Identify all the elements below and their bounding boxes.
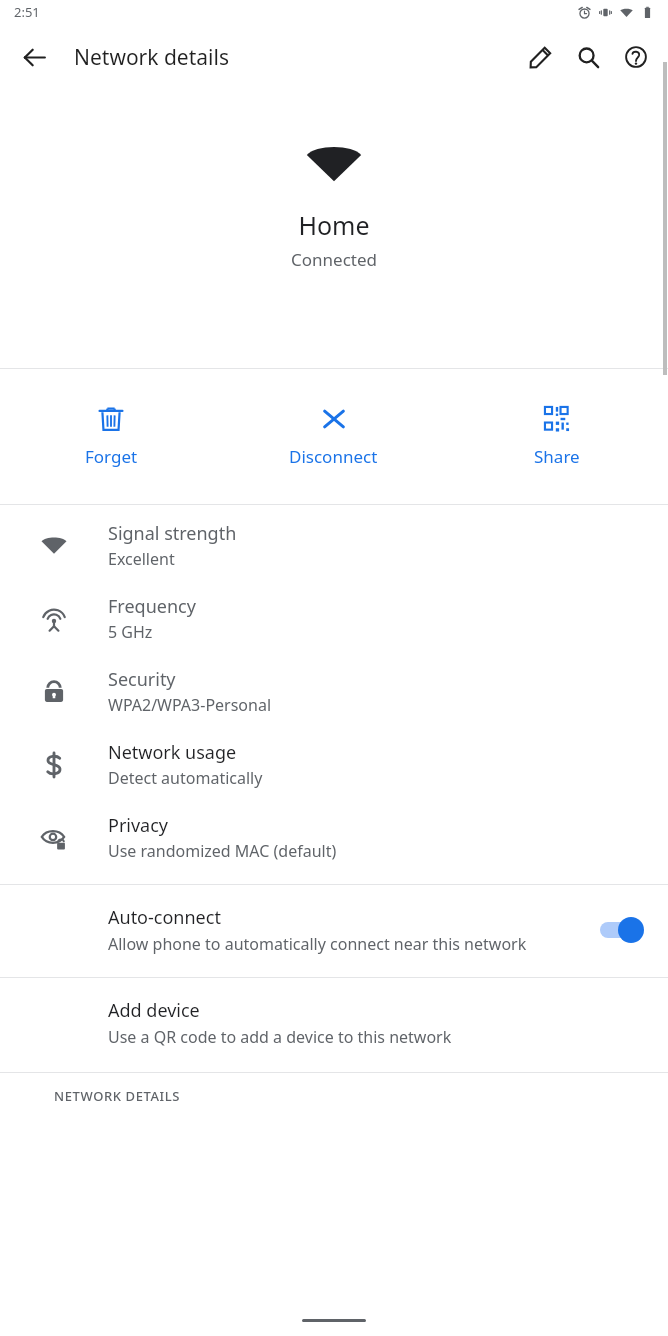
staticText: 5 GHz — [108, 621, 153, 643]
staticText: Disconnect — [289, 445, 378, 468]
button[interactable]: Search — [564, 33, 612, 81]
staticText: Detect automatically — [108, 767, 263, 789]
button[interactable]: Disconnect — [222, 369, 445, 504]
staticText: Auto-connect — [108, 905, 221, 930]
button[interactable]: Signal strength — [0, 505, 668, 582]
staticText: NETWORK DETAILS — [54, 1087, 181, 1105]
button[interactable]: Network usage — [0, 728, 668, 801]
staticText: WPA2/WPA3-Personal — [108, 694, 272, 716]
staticText: Add device — [108, 998, 200, 1023]
staticText: Security — [108, 667, 176, 692]
staticText: Connected — [291, 248, 377, 271]
staticText: Signal strength — [108, 521, 237, 546]
staticText: Privacy — [108, 813, 169, 838]
button[interactable]: Add device — [0, 978, 668, 1072]
staticText: Home — [298, 208, 370, 242]
staticText: Excellent — [108, 548, 175, 570]
button[interactable]: Share — [445, 369, 668, 504]
button[interactable]: Auto-connect — [0, 885, 668, 977]
button[interactable]: Frequency — [0, 582, 668, 655]
button[interactable]: Help — [612, 33, 660, 81]
staticText: Allow phone to automatically connect nea… — [108, 933, 527, 955]
staticText: Forget — [85, 445, 138, 468]
staticText: Use randomized MAC (default) — [108, 840, 337, 862]
staticText: Frequency — [108, 594, 196, 619]
button[interactable]: Security — [0, 655, 668, 728]
button[interactable]: Forget — [0, 369, 222, 504]
staticText: Network usage — [108, 740, 237, 765]
staticText: 2:51 — [14, 3, 40, 21]
button[interactable]: Privacy — [0, 801, 668, 884]
staticText: Share — [534, 445, 580, 468]
staticText: Use a QR code to add a device to this ne… — [108, 1026, 452, 1048]
button[interactable]: Back — [10, 33, 58, 81]
button[interactable]: Edit — [516, 33, 564, 81]
staticText: Network details — [74, 43, 229, 72]
